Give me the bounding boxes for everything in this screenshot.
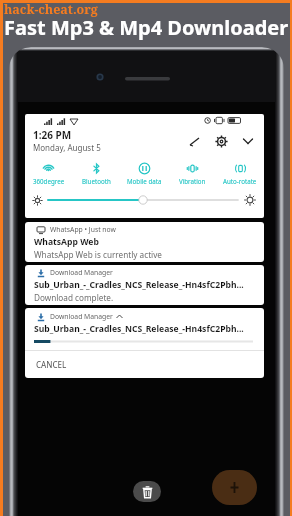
button[interactable]: 360degree (25, 161, 72, 186)
button[interactable]: Settings (212, 132, 230, 150)
button[interactable]: Auto-rotate (216, 161, 264, 186)
staticText: Fast Mp3 & Mp4 Downloader (4, 14, 289, 41)
staticText: 1:26 PM (33, 128, 72, 142)
staticText: 360degree (33, 177, 65, 185)
staticText: CANCEL (36, 359, 67, 370)
staticText: Download Manager (50, 312, 113, 321)
staticText: WhatsApp • Just now (50, 225, 116, 234)
staticText: WhatsApp Web (34, 236, 99, 248)
button[interactable]: Edit (185, 132, 203, 150)
button[interactable]: CANCEL (25, 351, 264, 378)
button[interactable]: Clear all notifications (133, 481, 161, 502)
button[interactable]: Download Manager (25, 265, 264, 305)
button[interactable]: Mobile data (120, 161, 168, 186)
button[interactable]: Download Manager (25, 308, 264, 378)
staticText: Bluetooth (82, 177, 111, 185)
staticText: Mobile data (127, 177, 162, 185)
staticText: Download Manager (50, 268, 113, 277)
button[interactable]: Bluetooth (72, 161, 120, 186)
button[interactable]: Expand (239, 132, 257, 150)
staticText: WhatsApp Web is currently active (34, 249, 162, 260)
staticText: Vibration (179, 177, 206, 185)
staticText: Sub_Urban_-_Cradles_NCS_Release_-Hn4sfC2… (34, 323, 244, 335)
staticText: Auto-rotate (223, 177, 257, 185)
staticText: Sub_Urban_-_Cradles_NCS_Release_-Hn4sfC2… (34, 279, 244, 291)
staticText: Monday, August 5 (33, 142, 101, 153)
button[interactable]: Add download (212, 470, 257, 505)
button[interactable]: Vibration (168, 161, 216, 186)
button[interactable]: WhatsApp • Just now (25, 222, 264, 262)
staticText: hack-cheat.org (4, 1, 98, 18)
staticText: Download complete. (34, 292, 114, 303)
